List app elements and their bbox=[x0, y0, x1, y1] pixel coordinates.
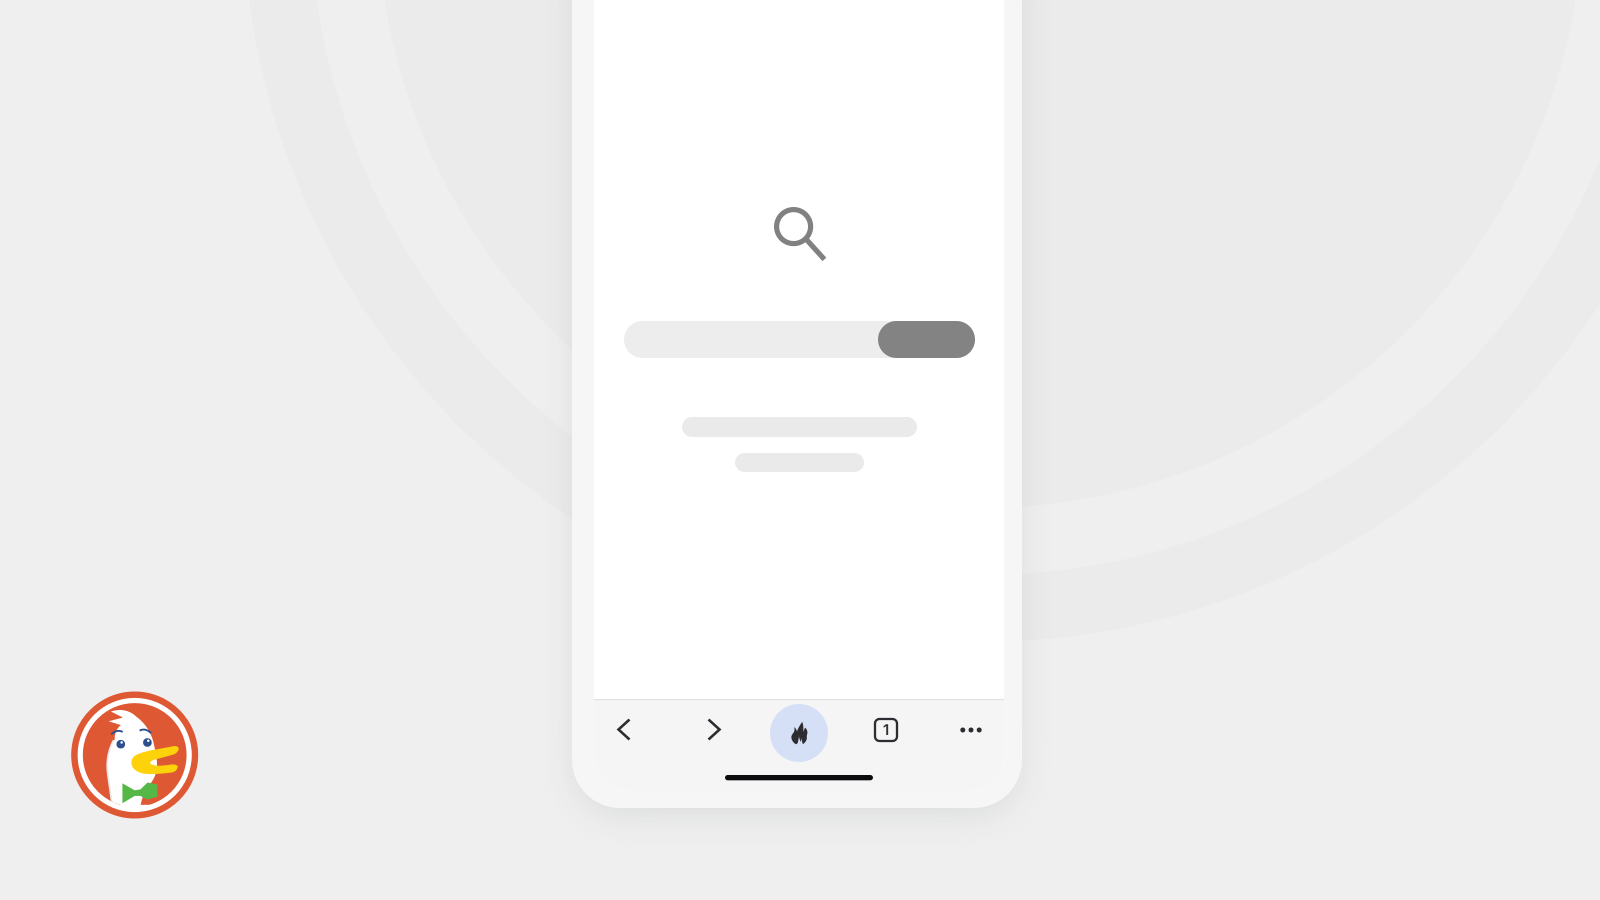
button[interactable]: Fire Button bbox=[770, 704, 828, 762]
button[interactable]: Tabs bbox=[863, 707, 909, 753]
button[interactable]: Forward bbox=[690, 705, 738, 753]
button[interactable]: More bbox=[948, 707, 994, 753]
staticText: 1 bbox=[883, 721, 889, 739]
button[interactable]: Back bbox=[600, 705, 648, 753]
